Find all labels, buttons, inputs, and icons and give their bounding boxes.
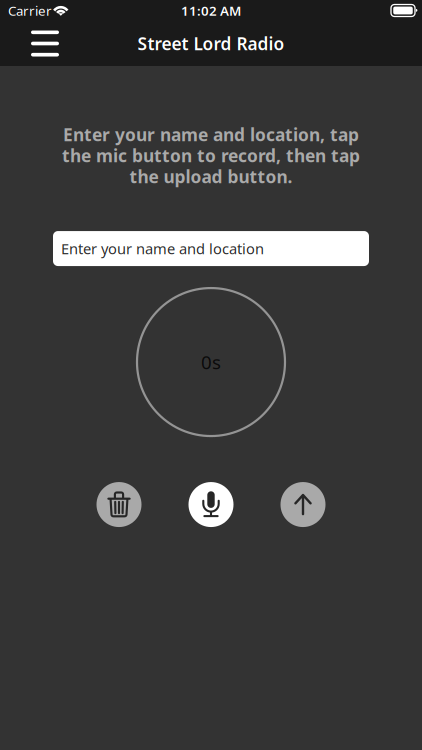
staticText: Street Lord Radio (137, 32, 284, 55)
button[interactable]: Enter your name and location (53, 231, 369, 266)
staticText: Carrier (8, 2, 52, 19)
button[interactable]: Menu (22, 23, 68, 63)
staticText: 0s (201, 350, 221, 374)
staticText: the mic button to record, then tap (62, 144, 360, 167)
staticText: the upload button. (129, 165, 292, 188)
button[interactable]: Delete recording (96, 482, 141, 527)
staticText: Enter your name and location, tap (63, 123, 359, 146)
button[interactable]: Upload (280, 482, 325, 527)
staticText: Enter your name and location (61, 239, 264, 258)
button[interactable]: Record (188, 482, 233, 527)
staticText: 11:02 AM (181, 2, 241, 19)
